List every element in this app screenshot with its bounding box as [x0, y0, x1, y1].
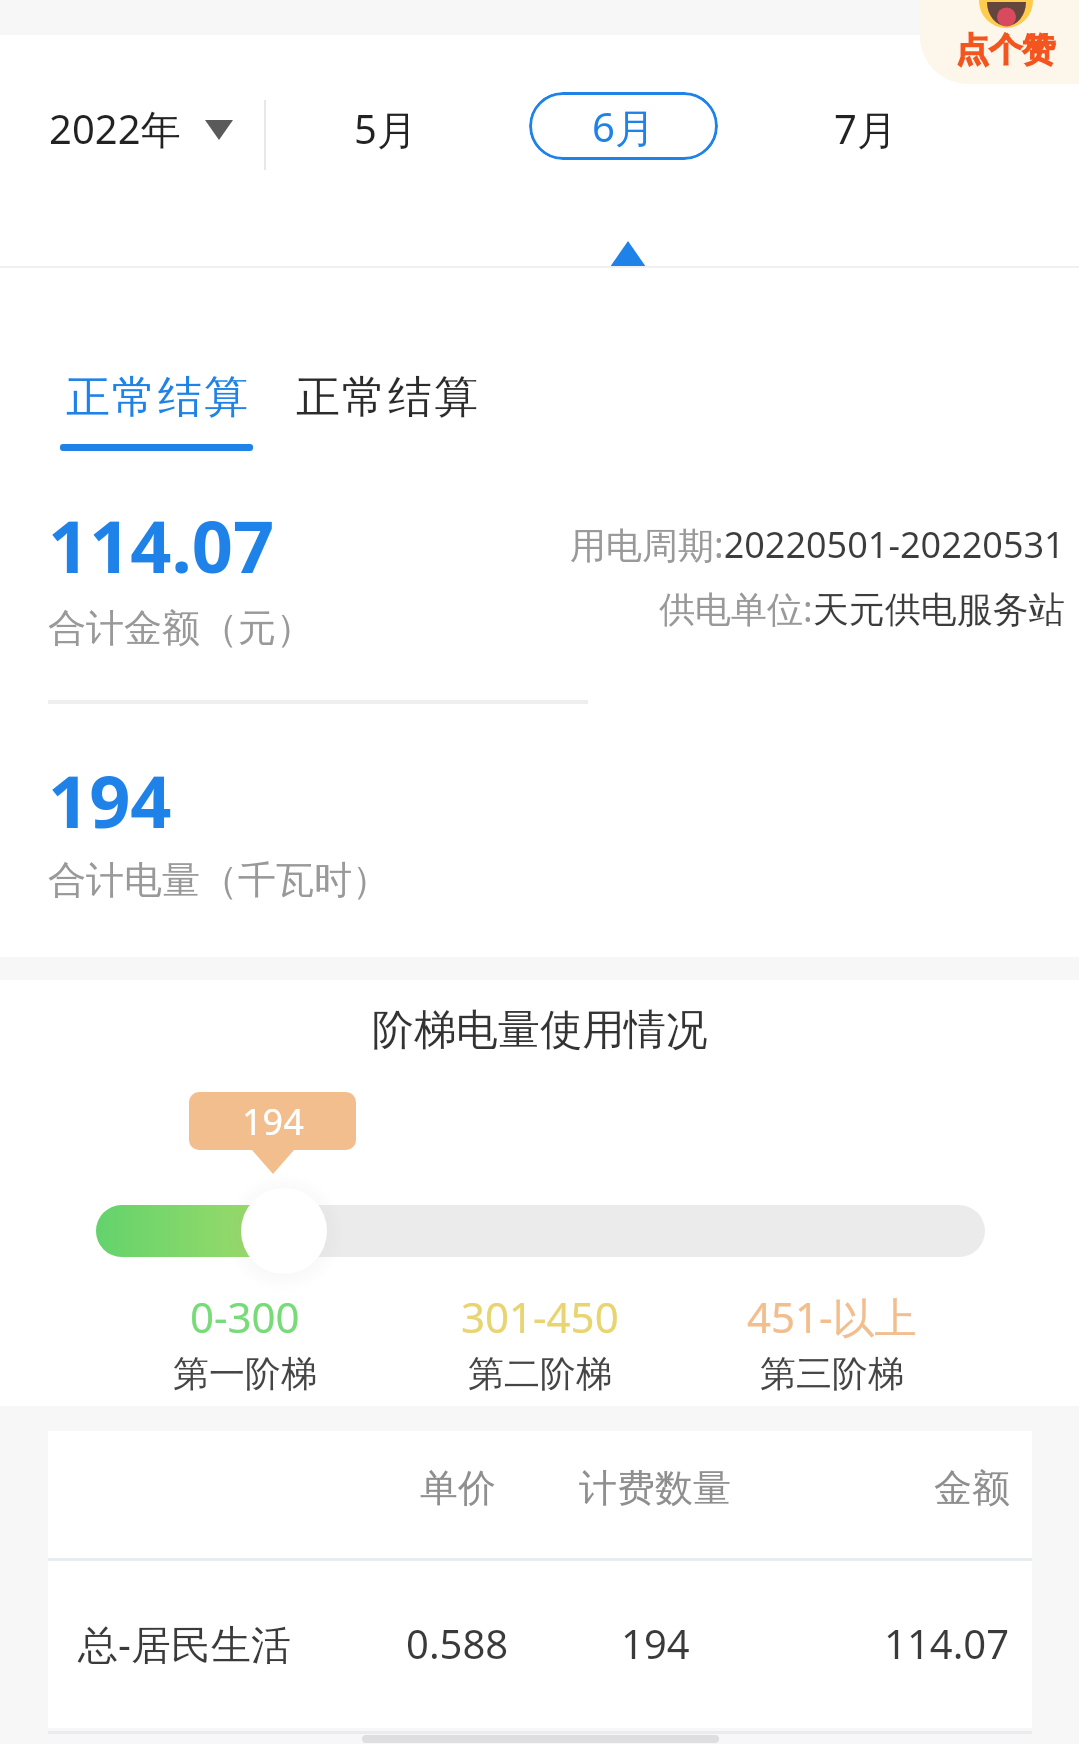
staticText: 5月 [354, 101, 417, 156]
staticText: 供电单位:天元供电服务站 [659, 584, 1065, 633]
staticText: 点个赞 [956, 29, 1055, 71]
staticText: 194 [621, 1616, 690, 1670]
staticText: 合计金额（元） [48, 604, 314, 652]
staticText: 7月 [834, 101, 897, 156]
staticText: 114.07 [48, 496, 275, 586]
staticText: 194 [48, 751, 172, 841]
staticText: 2022年 [49, 101, 181, 156]
staticText: 301-450 [461, 1288, 619, 1340]
button[interactable]: 5月 [330, 95, 440, 161]
staticText: 6月 [592, 99, 655, 154]
staticText: 正常结算 [65, 370, 249, 425]
staticText: 第一阶梯 [173, 1351, 317, 1396]
staticText: 计费数量 [579, 1464, 731, 1512]
button[interactable]: 正常结算 [288, 370, 486, 430]
staticText: 0.588 [406, 1616, 509, 1670]
button[interactable]: 6月 [529, 92, 718, 160]
staticText: 合计电量（千瓦时） [48, 856, 390, 904]
staticText: 金额 [934, 1464, 1010, 1512]
button[interactable]: 2022年 [46, 95, 236, 161]
button[interactable]: 7月 [810, 95, 920, 161]
staticText: 正常结算 [295, 370, 479, 425]
button[interactable] [920, 0, 1079, 84]
button[interactable]: 正常结算 [58, 370, 256, 452]
staticText: 451-以上 [747, 1288, 917, 1340]
staticText: 第二阶梯 [468, 1351, 612, 1396]
staticText: 用电周期:20220501-20220531 [570, 520, 1065, 569]
staticText: 第三阶梯 [760, 1351, 904, 1396]
staticText: 阶梯电量使用情况 [372, 1004, 708, 1057]
staticText: 194 [242, 1097, 304, 1146]
staticText: 0-300 [190, 1288, 300, 1340]
staticText: 114.07 [884, 1616, 1010, 1670]
staticText: 单价 [420, 1464, 496, 1512]
staticText: 总-居民生活 [78, 1616, 291, 1671]
